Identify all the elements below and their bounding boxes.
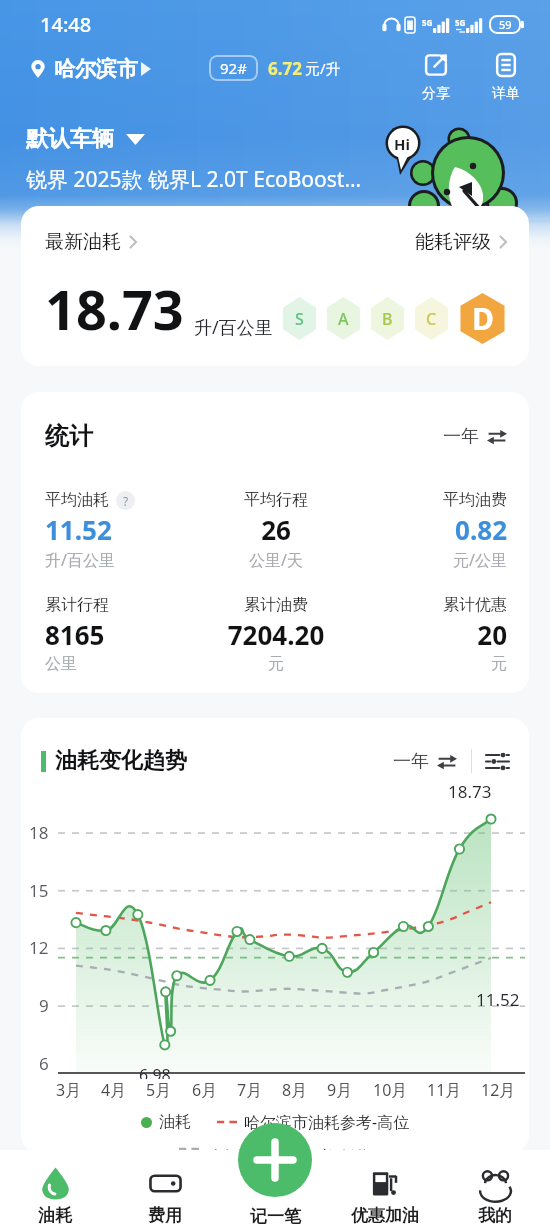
button[interactable]: 优惠加油 xyxy=(330,1166,440,1232)
staticText: 优惠加油 xyxy=(351,1205,419,1226)
staticText: 平均行程 xyxy=(244,490,308,510)
staticText: 10月 xyxy=(373,1079,408,1101)
button[interactable]: 筛选 xyxy=(486,750,509,773)
staticText: 油耗 xyxy=(159,1112,191,1132)
staticText: 累计行程 xyxy=(45,595,109,615)
staticText: 升/百公里 xyxy=(194,315,273,340)
staticText: 7204.20 xyxy=(199,617,353,652)
staticText: 我的 xyxy=(478,1205,512,1226)
staticText: 20 xyxy=(353,617,507,652)
button[interactable]: 92# xyxy=(209,55,258,81)
staticText: 11月 xyxy=(427,1079,462,1101)
button[interactable]: 记一笔 xyxy=(220,1166,330,1232)
staticText: S xyxy=(295,308,304,330)
staticText: 能耗评级 xyxy=(415,230,491,254)
staticText: 11.52 xyxy=(476,988,520,1011)
staticText: 公里/天 xyxy=(199,549,353,571)
staticText: 9 xyxy=(39,994,49,1017)
button[interactable]: 我的 xyxy=(440,1166,550,1232)
staticText: 累计优惠 xyxy=(443,595,507,615)
staticText: 6.98 xyxy=(139,1064,171,1079)
staticText: 9月 xyxy=(327,1079,353,1101)
staticText: 92# xyxy=(220,58,247,78)
staticText: A xyxy=(338,308,349,330)
staticText: 6.72 xyxy=(268,57,302,80)
staticText: 18 xyxy=(29,821,49,844)
button[interactable]: 帮助 xyxy=(116,491,135,510)
staticText: 最新油耗 xyxy=(45,230,121,254)
button[interactable]: D xyxy=(458,292,507,345)
staticText: 元/公里 xyxy=(353,549,507,571)
staticText: 累计油费 xyxy=(244,595,308,615)
staticText: 6 xyxy=(39,1052,49,1075)
button[interactable]: 一年 xyxy=(393,750,457,773)
staticText: 4月 xyxy=(101,1079,127,1101)
staticText: 元 xyxy=(353,654,507,674)
button[interactable]: 能耗评级 xyxy=(415,230,507,254)
staticText: 6月 xyxy=(192,1079,218,1101)
button[interactable]: A xyxy=(325,296,362,341)
staticText: 一年 xyxy=(443,425,479,448)
staticText: 油耗变化趋势 xyxy=(55,747,187,775)
staticText: 3月 xyxy=(56,1079,82,1101)
button[interactable]: 分享 xyxy=(420,48,452,103)
staticText: 12 xyxy=(29,936,49,959)
staticText: 哈尔滨市油耗参考-高位 xyxy=(244,1111,410,1133)
staticText: 元/升 xyxy=(305,58,341,78)
staticText: 锐界 2025款 锐界L 2.0T EcoBoost… xyxy=(26,165,361,194)
staticText: 26 xyxy=(199,512,353,547)
staticText: 哈尔滨市 xyxy=(54,56,138,82)
button[interactable]: B xyxy=(369,296,406,341)
staticText: 15 xyxy=(29,879,49,902)
staticText: 0.82 xyxy=(353,512,507,547)
staticText: ? xyxy=(123,493,129,509)
staticText: 18.73 xyxy=(448,780,492,803)
staticText: 11.52 xyxy=(45,512,199,547)
staticText: 公里 xyxy=(45,654,199,674)
button[interactable]: 哈尔滨市 xyxy=(31,56,151,82)
staticText: 一年 xyxy=(393,750,429,773)
staticText: 记一笔 xyxy=(250,1206,301,1227)
staticText: Hi xyxy=(394,134,410,154)
button[interactable]: 一年 xyxy=(443,425,507,448)
button[interactable]: 油耗 xyxy=(0,1166,110,1232)
staticText: 分享 xyxy=(422,85,450,103)
button[interactable]: 默认车辆 xyxy=(26,125,145,153)
staticText: 默认车辆 xyxy=(26,125,114,153)
staticText: 升/百公里 xyxy=(45,549,199,571)
staticText: 12月 xyxy=(481,1079,516,1101)
staticText: 详单 xyxy=(492,85,520,103)
staticText: D xyxy=(472,298,494,339)
staticText: 8165 xyxy=(45,617,199,652)
button[interactable]: 记一笔 xyxy=(238,1123,312,1197)
staticText: 5G xyxy=(422,17,433,28)
staticText: 14:48 xyxy=(40,11,92,38)
staticText: 哈尔滨市油耗参考-低位 xyxy=(206,1145,372,1153)
staticText: 18.73 xyxy=(45,272,184,346)
staticText: 5月 xyxy=(146,1079,172,1101)
staticText: 8月 xyxy=(282,1079,308,1101)
button[interactable]: S xyxy=(281,296,318,341)
staticText: 油耗 xyxy=(38,1205,72,1226)
button[interactable]: 费用 xyxy=(110,1166,220,1232)
staticText: C xyxy=(426,308,437,330)
button[interactable]: 详单 xyxy=(490,48,522,103)
button[interactable]: 最新油耗 xyxy=(45,230,137,254)
staticText: 7月 xyxy=(237,1079,263,1101)
staticText: 平均油费 xyxy=(443,490,507,510)
staticText: 5G xyxy=(455,17,466,28)
staticText: B xyxy=(382,308,393,330)
button[interactable]: C xyxy=(413,296,450,341)
staticText: 59 xyxy=(499,17,512,32)
staticText: 费用 xyxy=(148,1205,182,1226)
staticText: 平均油耗 xyxy=(45,490,109,510)
staticText: 元 xyxy=(199,654,353,674)
staticText: 统计 xyxy=(45,421,93,451)
